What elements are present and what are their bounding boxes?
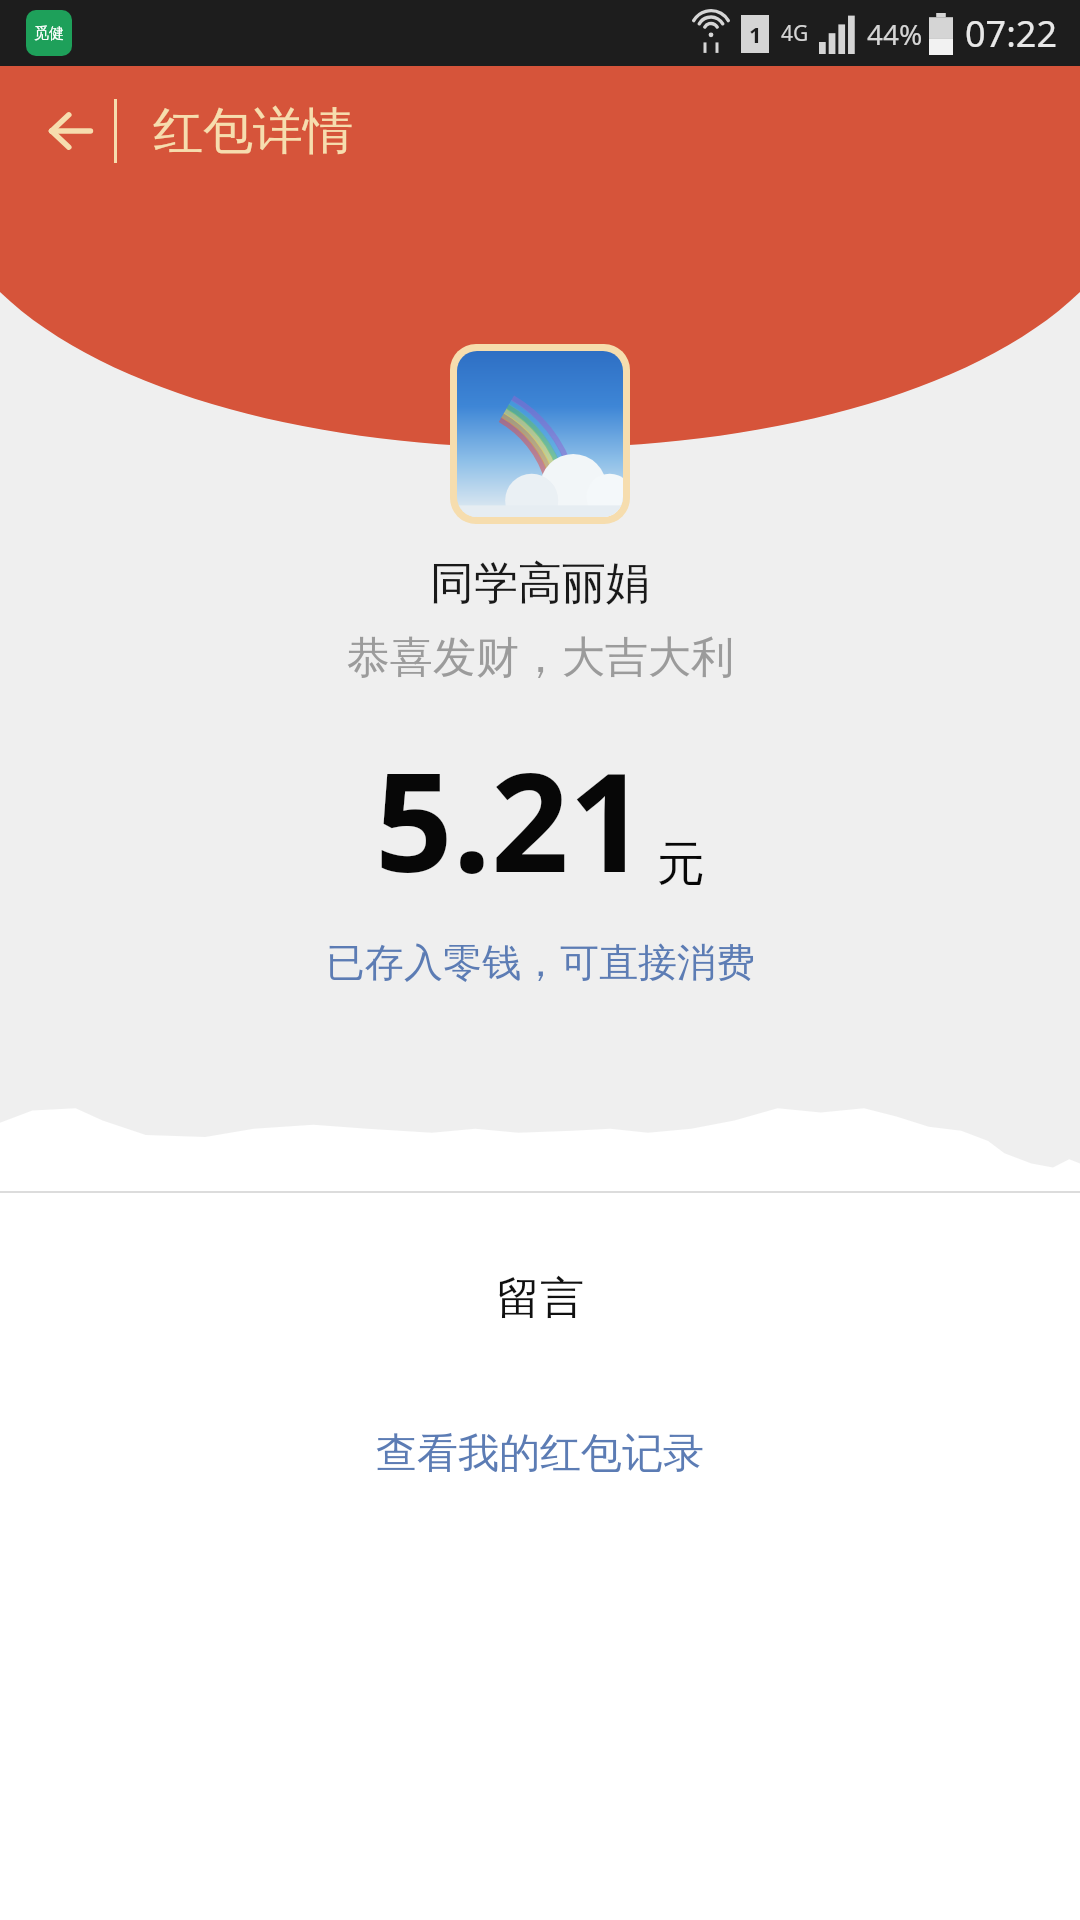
- staticText: 查看我的红包记录: [376, 1428, 704, 1480]
- staticText: 元: [657, 834, 705, 894]
- staticText: 留言: [496, 1271, 584, 1326]
- staticText: 红包详情: [153, 100, 353, 163]
- button[interactable]: 留言: [436, 1261, 644, 1336]
- staticText: 44%: [867, 15, 923, 53]
- staticText: 4G: [781, 19, 809, 48]
- staticText: 觅健: [34, 24, 64, 43]
- staticText: 5.21: [375, 727, 647, 912]
- staticText: 恭喜发财，大吉大利: [347, 631, 734, 685]
- staticText: 07:22: [965, 9, 1058, 58]
- button[interactable]: Back: [28, 88, 114, 174]
- staticText: 同学高丽娟: [430, 556, 650, 611]
- button[interactable]: 查看我的红包记录: [316, 1416, 764, 1492]
- staticText: 1: [749, 19, 762, 49]
- staticText: 已存入零钱，可直接消费: [326, 938, 755, 987]
